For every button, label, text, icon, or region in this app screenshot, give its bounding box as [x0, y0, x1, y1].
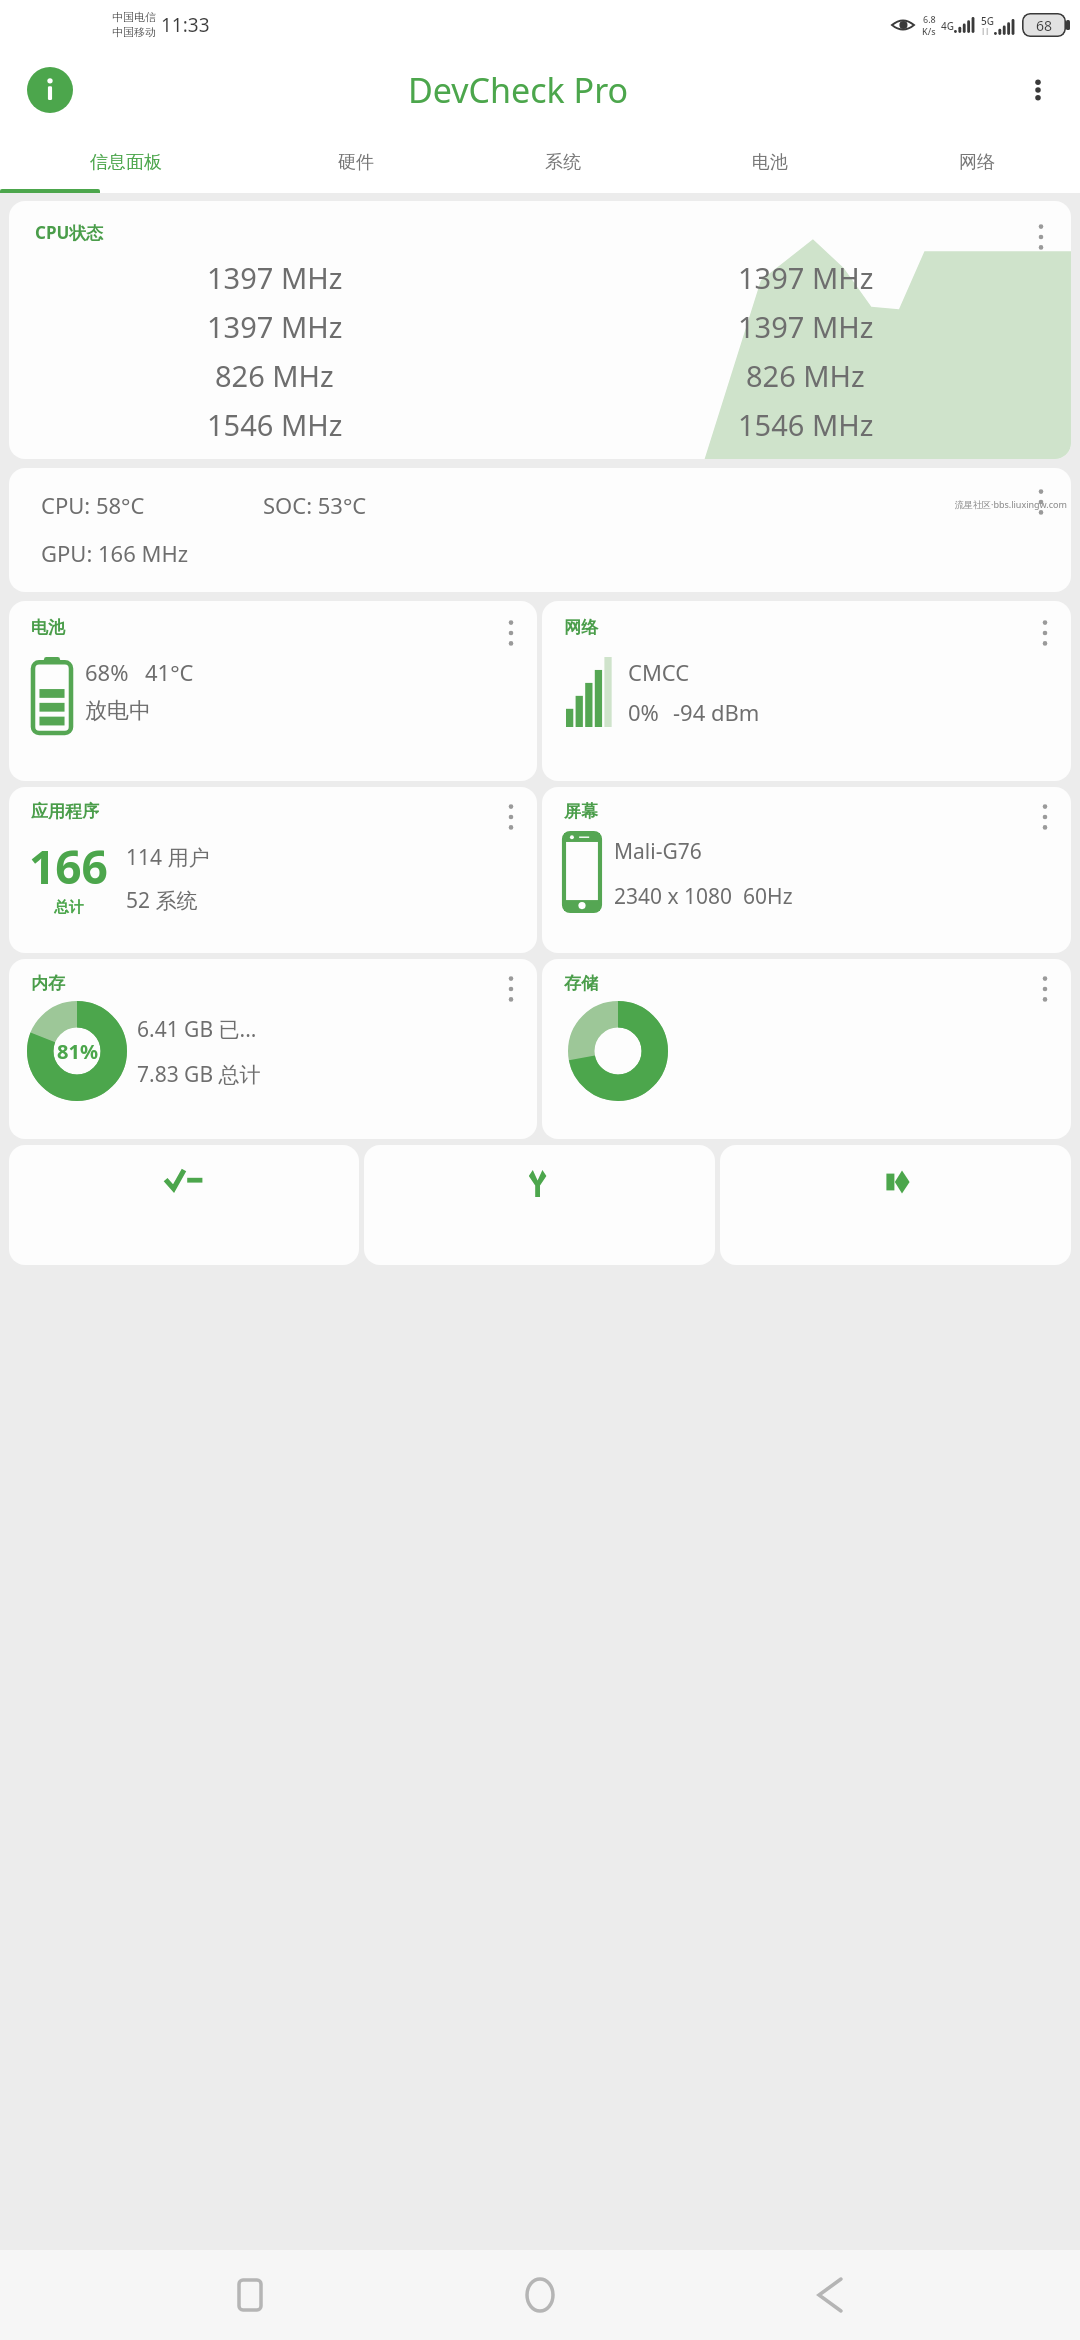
staticText: 1546 MHz	[738, 405, 874, 444]
staticText: 7.83 GB 总计	[137, 1060, 261, 1089]
button[interactable]: 电池	[9, 601, 537, 781]
staticText: GPU: 166 MHz	[41, 538, 189, 568]
button[interactable]: 网络	[542, 601, 1071, 781]
staticText: 1397 MHz	[207, 258, 343, 297]
button[interactable]: CPU状态	[9, 201, 1071, 459]
staticText: 826 MHz	[746, 356, 865, 395]
staticText: DevCheck Pro	[408, 67, 629, 113]
button[interactable]: 电池	[666, 132, 873, 193]
staticText: 52 系统	[126, 886, 198, 915]
button[interactable]: 硬件	[252, 132, 459, 193]
staticText: Mali-G76	[614, 837, 702, 866]
staticText: 2340 x 1080 60Hz	[614, 882, 793, 911]
staticText: 电池	[31, 617, 65, 638]
staticText: 屏幕	[564, 801, 598, 822]
button[interactable]: More options	[497, 797, 525, 837]
button[interactable]: Recent apps	[210, 2255, 290, 2335]
button[interactable]: About	[22, 62, 78, 118]
staticText: 网络	[564, 617, 598, 638]
button[interactable]: Home	[500, 2255, 580, 2335]
staticText: 系统	[545, 151, 581, 174]
staticText: 1397 MHz	[738, 307, 874, 346]
staticText: 4G	[941, 19, 954, 33]
staticText: 总计	[54, 898, 84, 917]
button[interactable]: Back	[790, 2255, 870, 2335]
staticText: 68%	[85, 657, 129, 687]
staticText: 1397 MHz	[207, 307, 343, 346]
button[interactable]	[364, 1145, 715, 1265]
button[interactable]: 信息面板	[0, 132, 252, 193]
staticText: CPU状态	[35, 221, 104, 244]
staticText: 166	[29, 835, 108, 898]
staticText: 826 MHz	[215, 356, 334, 395]
staticText: 网络	[959, 151, 995, 174]
staticText: 0%	[628, 697, 659, 727]
button[interactable]: More options	[497, 613, 525, 653]
staticText: 应用程序	[31, 801, 99, 822]
button[interactable]: More options	[497, 969, 525, 1009]
button[interactable]	[720, 1145, 1071, 1265]
staticText: 41°C	[145, 657, 194, 687]
staticText: -94 dBm	[673, 697, 760, 727]
staticText: 6.41 GB 已...	[137, 1015, 257, 1044]
button[interactable]: More options	[1031, 969, 1059, 1009]
button[interactable]: 应用程序	[9, 787, 537, 953]
button[interactable]: 存储	[542, 959, 1071, 1139]
button[interactable]	[9, 1145, 359, 1265]
staticText: 68	[1036, 16, 1053, 35]
button[interactable]: 网络	[873, 132, 1080, 193]
staticText: 1397 MHz	[738, 258, 874, 297]
button[interactable]: More options	[9, 468, 1071, 592]
staticText: 中国移动	[112, 25, 156, 39]
staticText: 81%	[57, 1038, 98, 1065]
staticText: 1546 MHz	[207, 405, 343, 444]
staticText: 放电中	[85, 697, 151, 725]
button[interactable]: More options	[1014, 66, 1062, 114]
button[interactable]: More options	[1031, 613, 1059, 653]
button[interactable]: More options	[1031, 797, 1059, 837]
staticText: 流星社区·bbs.liuxingw.com	[955, 498, 1067, 510]
staticText: SOC: 53°C	[263, 490, 367, 520]
button[interactable]: More options	[1027, 217, 1055, 257]
button[interactable]: 屏幕	[542, 787, 1071, 953]
staticText: 5G	[981, 14, 994, 28]
staticText: 电池	[752, 151, 788, 174]
staticText: CPU: 58°C	[41, 490, 145, 520]
staticText: 信息面板	[90, 151, 162, 174]
staticText: CMCC	[628, 657, 690, 687]
staticText: 6.8	[923, 13, 936, 25]
button[interactable]: 系统	[459, 132, 666, 193]
staticText: 11:33	[161, 12, 210, 38]
staticText: K/s	[922, 25, 936, 37]
button[interactable]: 内存	[9, 959, 537, 1139]
staticText: 硬件	[338, 151, 374, 174]
staticText: 内存	[31, 973, 65, 994]
staticText: 存储	[564, 973, 598, 994]
button[interactable]: More options	[1027, 482, 1055, 522]
staticText: 114 用户	[126, 843, 210, 872]
staticText: 中国电信	[112, 10, 156, 24]
